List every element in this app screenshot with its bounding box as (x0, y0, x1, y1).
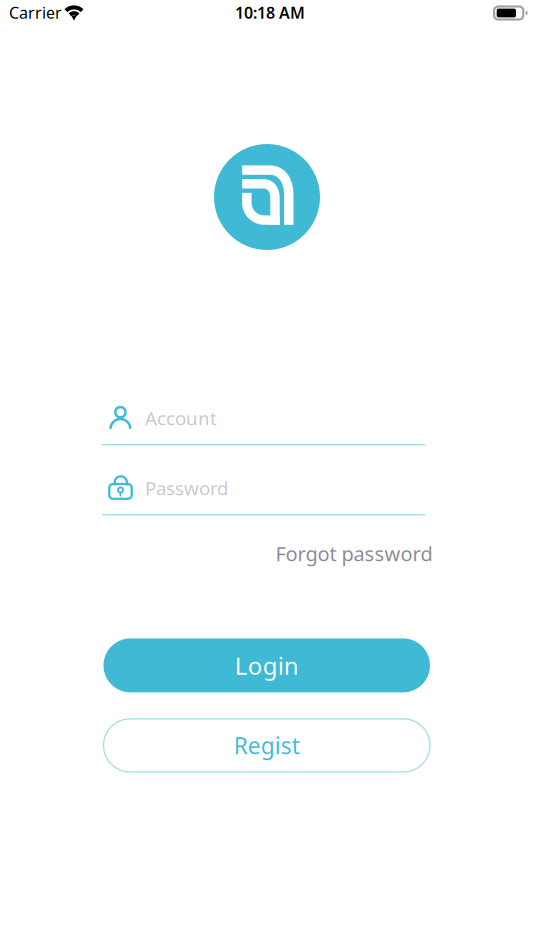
staticText: 10:18 AM (235, 2, 305, 23)
staticText: Carrier (9, 2, 62, 23)
staticText: Forgot password (275, 540, 432, 567)
staticText: Password (145, 476, 228, 500)
button[interactable]: Regist (103, 719, 430, 772)
button[interactable]: Login (103, 638, 430, 692)
staticText: Account (145, 406, 217, 430)
staticText: Login (235, 649, 299, 681)
button[interactable]: Forgot password (275, 540, 432, 566)
staticText: Regist (234, 730, 300, 760)
